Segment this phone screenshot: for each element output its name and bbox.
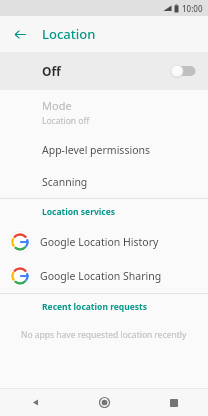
button[interactable]: Mode [0,90,208,134]
button[interactable]: Google Location History [0,225,208,259]
button[interactable]: Off [0,52,208,90]
button[interactable]: Recent apps [139,389,208,416]
staticText: Off [42,63,61,79]
staticText: 10:00 [182,3,203,14]
staticText: Scanning [42,175,88,189]
staticText: App-level permissions [42,143,151,157]
button[interactable]: Back [8,22,32,46]
button[interactable]: App-level permissions [0,134,208,166]
button[interactable]: Scanning [0,166,208,198]
staticText: Location off [42,115,90,127]
staticText: Google Location Sharing [40,269,162,283]
button[interactable]: Back [0,389,70,416]
staticText: Google Location History [40,235,159,249]
staticText: Location services [42,206,116,218]
staticText: Recent location requests [42,301,148,313]
staticText: No apps have requested location recently [21,329,187,341]
staticText: Location [42,25,96,43]
button[interactable]: Home [70,389,139,416]
staticText: Mode [42,98,72,113]
button[interactable]: Google Location Sharing [0,259,208,293]
